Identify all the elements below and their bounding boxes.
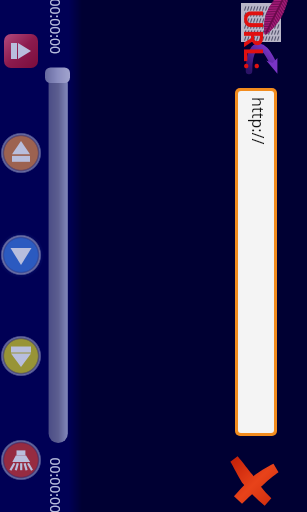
- button[interactable]: Light: [0, 432, 49, 488]
- button[interactable]: Insert: [0, 328, 49, 384]
- staticText: 00:00:00: [45, 0, 64, 54]
- staticText: http://: [247, 97, 269, 145]
- staticText: 00:00:00: [45, 457, 64, 512]
- button[interactable]: Play: [4, 34, 38, 68]
- button[interactable]: Edit URL: [235, 0, 291, 72]
- staticText: URL:: [236, 9, 273, 70]
- button[interactable]: Download: [0, 227, 49, 283]
- button[interactable]: Eject: [0, 125, 49, 181]
- button[interactable]: [235, 88, 277, 436]
- button[interactable]: Clear: [228, 454, 284, 510]
